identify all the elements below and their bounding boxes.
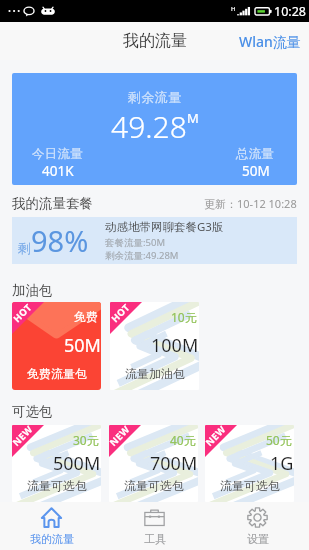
button[interactable]: 40元: [109, 425, 198, 502]
staticText: 100M: [151, 333, 199, 358]
staticText: Wlan流量: [239, 32, 301, 51]
staticText: 可选包: [12, 403, 53, 420]
button[interactable]: 免费: [12, 302, 101, 390]
staticText: 98%: [31, 221, 89, 260]
staticText: 剩余流量: [128, 89, 182, 105]
staticText: 50M: [64, 333, 101, 358]
staticText: 1G: [270, 451, 294, 476]
button[interactable]: 剩: [12, 217, 297, 264]
button[interactable]: 工具: [103, 502, 206, 550]
staticText: 流量可选包: [27, 478, 87, 493]
staticText: 10:28: [274, 3, 306, 20]
staticText: 500M: [53, 451, 101, 476]
staticText: 40元: [170, 432, 196, 448]
staticText: 今日流量: [32, 146, 84, 162]
button[interactable]: 50元: [205, 425, 294, 502]
staticText: 30元: [73, 432, 99, 448]
staticText: H: [231, 5, 236, 13]
staticText: NEW: [12, 425, 36, 449]
staticText: 设置: [247, 532, 269, 546]
staticText: NEW: [109, 425, 133, 449]
staticText: 50M: [242, 162, 270, 180]
staticText: 剩: [18, 240, 31, 256]
staticText: 更新：10-12 10:28: [204, 196, 297, 211]
staticText: 10元: [171, 309, 197, 325]
staticText: 401K: [42, 162, 74, 180]
staticText: 免费流量包: [27, 366, 87, 381]
staticText: 700M: [150, 451, 198, 476]
staticText: 剩余流量:49.28M: [105, 249, 179, 262]
staticText: M: [187, 109, 199, 127]
staticText: 我的流量: [30, 532, 74, 546]
staticText: 流量加油包: [125, 366, 185, 381]
button[interactable]: 剩余流量: [12, 73, 297, 185]
staticText: 我的流量套餐: [12, 195, 93, 212]
button[interactable]: 设置: [206, 502, 309, 550]
staticText: HOT: [110, 302, 133, 325]
button[interactable]: Wlan流量: [225, 24, 309, 59]
staticText: 工具: [144, 532, 166, 546]
button[interactable]: 30元: [12, 425, 101, 502]
button[interactable]: 10元: [110, 302, 199, 390]
staticText: HOT: [12, 302, 35, 325]
button[interactable]: 我的流量: [0, 502, 103, 550]
staticText: 流量可选包: [124, 478, 184, 493]
staticText: NEW: [205, 425, 229, 449]
staticText: 50元: [266, 432, 292, 448]
staticText: 流量可选包: [220, 478, 280, 493]
staticText: 我的流量: [123, 31, 187, 51]
staticText: 加油包: [12, 282, 53, 299]
staticText: 49.28: [111, 106, 187, 147]
staticText: 总流量: [236, 146, 275, 162]
staticText: 动感地带网聊套餐G3版: [105, 219, 224, 235]
staticText: 套餐流量:50M: [105, 236, 166, 249]
staticText: 免费: [74, 309, 98, 324]
